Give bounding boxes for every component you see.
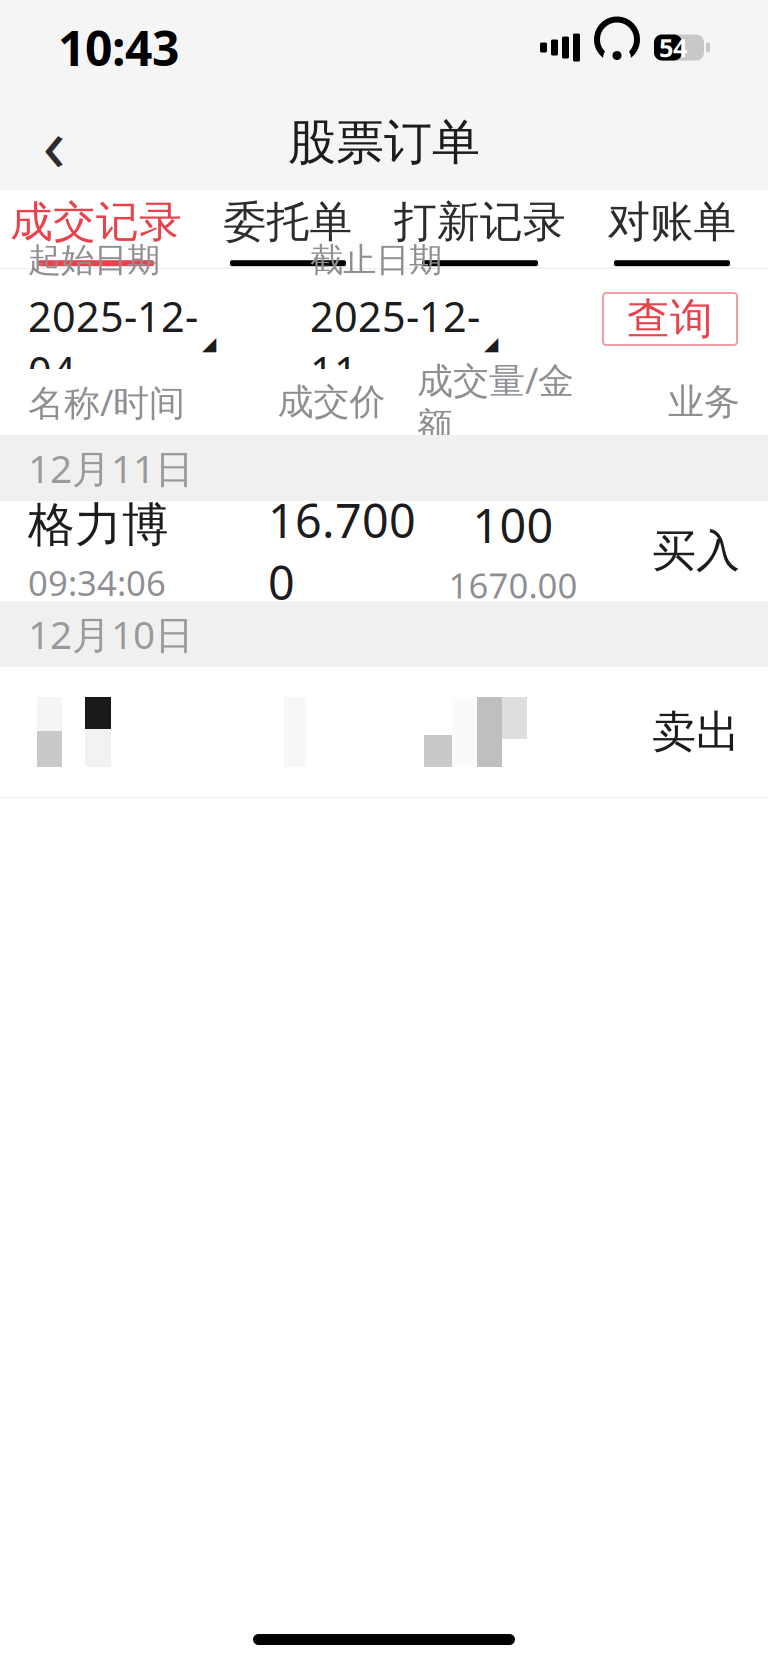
staticText: 股票订单: [288, 113, 480, 172]
staticText: ◢: [202, 333, 216, 354]
staticText: 10:43: [58, 16, 179, 79]
staticText: 09:34:06: [28, 560, 166, 606]
staticText: 对账单: [607, 196, 736, 248]
staticText: 16.7000: [268, 489, 416, 613]
staticText: 查询: [627, 293, 713, 345]
button[interactable]: Back: [16, 104, 92, 180]
button[interactable]: 成交记录: [0, 190, 192, 268]
staticText: 卖出: [652, 705, 740, 759]
staticText: 成交记录: [10, 196, 182, 248]
staticText: 2025-12-04: [28, 289, 198, 398]
staticText: 买入: [652, 524, 740, 578]
staticText: 1670.00: [448, 562, 577, 608]
staticText: 54: [659, 31, 687, 64]
staticText: 成交量/金额: [417, 356, 574, 448]
staticText: 格力博: [28, 496, 169, 554]
staticText: 2025-12-11: [310, 289, 480, 398]
button[interactable]: 卖出: [0, 667, 768, 798]
staticText: 12月10日: [28, 608, 194, 660]
button[interactable]: 格力博: [0, 501, 768, 601]
button[interactable]: 截止日期: [310, 240, 530, 398]
button[interactable]: 委托单: [192, 190, 384, 268]
button[interactable]: 对账单: [576, 190, 768, 268]
staticText: 12月11日: [28, 442, 194, 494]
staticText: 名称/时间: [28, 378, 185, 426]
button[interactable]: 起始日期: [28, 240, 248, 398]
staticText: 业务: [668, 380, 740, 424]
staticText: 委托单: [223, 196, 352, 248]
staticText: 成交价: [277, 380, 385, 424]
button[interactable]: 查询: [603, 293, 737, 345]
staticText: ◢: [484, 333, 498, 354]
button[interactable]: 打新记录: [384, 190, 576, 268]
staticText: 截止日期: [310, 240, 442, 280]
staticText: 100: [472, 494, 553, 556]
staticText: 起始日期: [28, 240, 160, 280]
staticText: ‹: [42, 93, 65, 192]
staticText: 打新记录: [394, 196, 566, 248]
